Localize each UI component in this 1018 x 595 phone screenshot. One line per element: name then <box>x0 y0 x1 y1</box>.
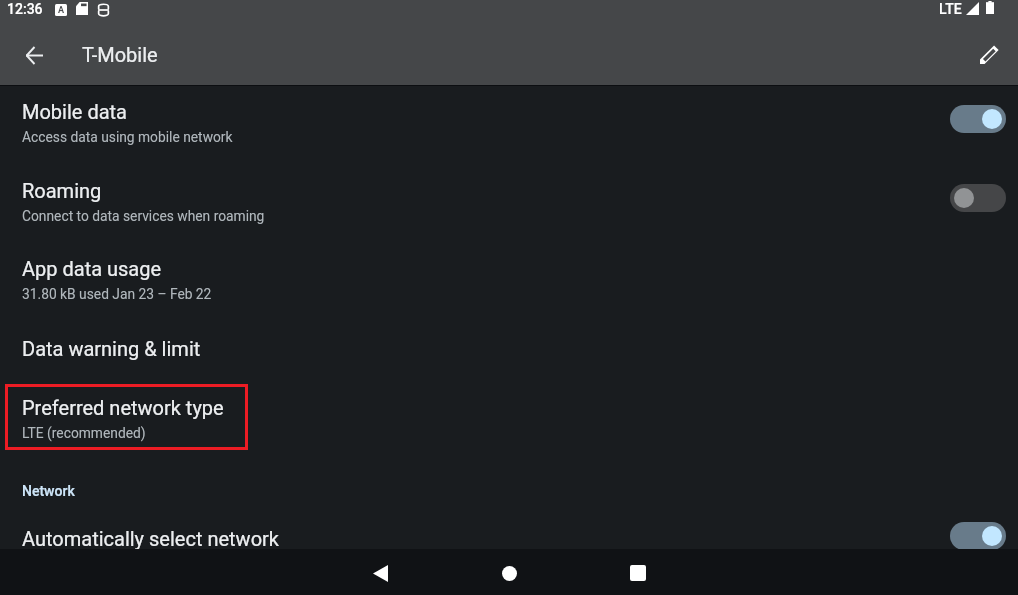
button[interactable]: App data usage <box>0 245 1018 324</box>
button[interactable]: Back <box>13 34 55 76</box>
button[interactable]: Preferred network type <box>0 383 1018 449</box>
button[interactable]: Roaming <box>0 166 1018 245</box>
button[interactable]: Recents <box>613 550 663 595</box>
button[interactable]: Mobile data <box>0 87 1018 166</box>
staticText: Roaming <box>22 179 102 202</box>
staticText: 12:36 <box>7 1 43 17</box>
staticText: Automatically select network <box>22 527 279 549</box>
staticText: LTE <box>939 1 962 17</box>
button[interactable]: Toggle off <box>950 184 1006 212</box>
button[interactable]: Edit <box>968 33 1010 75</box>
staticText: A <box>58 5 65 16</box>
button[interactable]: Home <box>484 550 534 595</box>
staticText: App data usage <box>22 257 162 280</box>
staticText: Preferred network type <box>22 396 224 419</box>
staticText: T-Mobile <box>82 43 158 66</box>
staticText: Mobile data <box>22 100 127 123</box>
staticText: Connect to data services when roaming <box>22 208 265 224</box>
staticText: LTE (recommended) <box>22 425 146 441</box>
button[interactable]: Data warning & limit <box>0 324 1018 383</box>
button[interactable]: Back <box>355 550 405 595</box>
button[interactable]: Automatically select network <box>0 514 1018 549</box>
staticText: Network <box>22 483 75 499</box>
button[interactable]: Toggle on <box>950 105 1006 133</box>
staticText: Data warning & limit <box>22 337 201 360</box>
button[interactable]: Toggle on <box>950 522 1006 550</box>
staticText: Access data using mobile network <box>22 129 233 145</box>
staticText: 31.80 kB used Jan 23 – Feb 22 <box>22 286 212 302</box>
